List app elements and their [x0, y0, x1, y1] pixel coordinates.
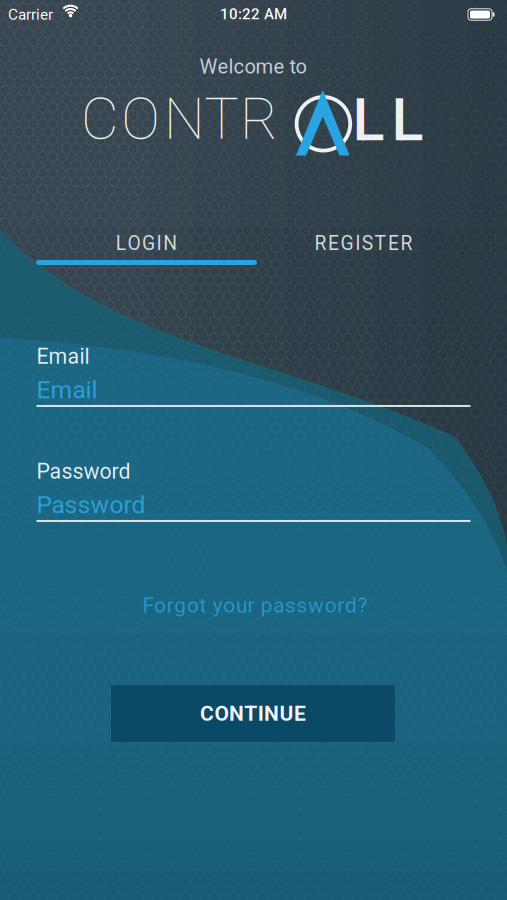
staticText: C [81, 85, 119, 153]
staticText: T [204, 85, 239, 153]
button[interactable]: CONTINUE [111, 685, 395, 742]
staticText: Carrier [8, 5, 53, 23]
staticText: Forgot your password? [142, 593, 367, 618]
staticText: 10:22 AM [220, 5, 287, 23]
staticText: Password [36, 459, 130, 484]
button[interactable]: LOGIN [36, 223, 257, 263]
button[interactable]: Email [36, 344, 470, 407]
button[interactable]: Forgot your password? [95, 591, 415, 619]
staticText: LOGIN [116, 232, 177, 255]
staticText: REGISTER [314, 232, 413, 255]
staticText: N [164, 85, 205, 153]
staticText: Email [36, 375, 97, 404]
staticText: Email [36, 344, 89, 369]
button[interactable]: REGISTER [257, 223, 470, 263]
staticText: R [240, 85, 278, 153]
button[interactable]: Password [36, 459, 470, 522]
staticText: L [352, 85, 384, 155]
staticText: O [121, 85, 160, 153]
staticText: L [391, 85, 423, 155]
staticText: Welcome to [199, 55, 306, 78]
staticText: Password [36, 490, 145, 519]
staticText: CONTINUE [200, 701, 306, 726]
